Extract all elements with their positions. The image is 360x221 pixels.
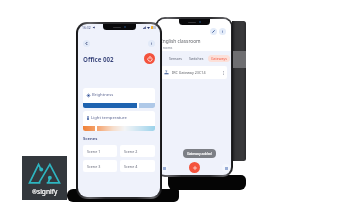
button[interactable]: List [222, 164, 230, 172]
staticText: English classroom [160, 38, 201, 45]
staticText: 16:32 [82, 25, 91, 30]
staticText: Scene 2 [124, 149, 138, 154]
button[interactable]: Switches [186, 55, 207, 62]
button[interactable]: Information [219, 28, 226, 35]
staticText: IRC Gateway 23C14 [172, 70, 206, 75]
staticText: 4 rooms [160, 46, 173, 50]
button[interactable]: Scene 3 [83, 160, 117, 172]
staticText: Light temperature [91, 115, 127, 121]
button[interactable]: Scene 4 [120, 160, 155, 172]
button[interactable]: Add [189, 162, 200, 173]
staticText: ® [32, 188, 37, 196]
button[interactable]: Scene 1 [83, 145, 117, 157]
staticText: signify [37, 187, 58, 196]
button[interactable]: Menu [160, 164, 168, 172]
button[interactable]: More options [223, 71, 224, 75]
button[interactable]: Sensors [166, 55, 185, 62]
button[interactable]: Scene 2 [120, 145, 155, 157]
staticText: Scene 3 [87, 164, 101, 169]
staticText: Sensors [169, 56, 182, 61]
staticText: Scene 1 [87, 149, 101, 154]
staticText: Scenes [83, 136, 98, 142]
button[interactable]: Light temperature [83, 111, 155, 131]
button[interactable]: Brightness [83, 88, 155, 108]
button[interactable]: Edit [210, 28, 217, 35]
button[interactable]: IRC Gateway 23C14 [161, 66, 227, 79]
button[interactable]: Gateways [208, 55, 230, 62]
staticText: Switches [189, 56, 204, 61]
button[interactable]: Back [83, 40, 90, 47]
staticText: Gateway added [187, 151, 212, 156]
button[interactable]: Information [148, 40, 155, 47]
staticText: Brightness [92, 92, 114, 98]
staticText: Office 002 [83, 55, 114, 63]
button[interactable]: Power toggle [144, 53, 155, 64]
staticText: Gateways [211, 56, 227, 61]
staticText: Scene 4 [124, 164, 138, 169]
